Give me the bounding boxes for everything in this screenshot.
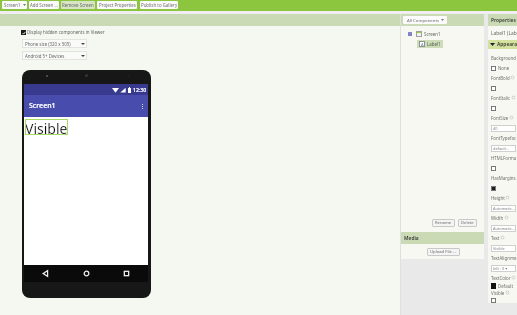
button[interactable]: Back: [42, 270, 49, 277]
button[interactable]: Rename: [432, 219, 455, 227]
staticText: Default: [498, 283, 514, 289]
staticText: TextAlignme: [491, 255, 517, 261]
staticText: 12:30: [133, 86, 147, 93]
button[interactable]: default...: [491, 145, 516, 152]
button[interactable]: Default: [491, 283, 514, 289]
button[interactable]: Add Screen ...: [29, 1, 59, 9]
staticText: Phone size (320 x 505): [25, 41, 71, 47]
staticText: Width: [491, 215, 504, 221]
button[interactable]: Project Properties: [97, 1, 137, 9]
button[interactable]: A: [417, 40, 443, 48]
button[interactable]: [488, 182, 517, 194]
button[interactable]: 40: [491, 125, 516, 132]
staticText: A: [421, 42, 424, 47]
staticText: Screen1: [4, 2, 21, 8]
staticText: TextColor: [491, 275, 511, 281]
staticText: HasMargins: [491, 175, 516, 181]
button[interactable]: Android 5+ Devices: [22, 51, 87, 60]
staticText: Add Screen ...: [30, 2, 58, 8]
staticText: Project Properties: [99, 2, 136, 8]
button[interactable]: Display hidden components in Viewer: [21, 29, 105, 35]
button[interactable]: Screen1: [408, 31, 441, 37]
button[interactable]: Appearanc: [488, 40, 517, 49]
button[interactable]: [488, 82, 517, 94]
button[interactable]: Delete: [458, 219, 477, 227]
staticText: FontTypefac: [491, 135, 517, 141]
button[interactable]: Recents: [123, 270, 130, 277]
button[interactable]: [488, 297, 517, 303]
staticText: Remove Screen: [62, 2, 94, 8]
staticText: Display hidden components in Viewer: [27, 29, 105, 35]
staticText: Height: [491, 195, 505, 201]
button[interactable]: Automatic...: [491, 205, 516, 212]
staticText: Media: [404, 235, 419, 242]
button[interactable]: [488, 162, 517, 174]
button[interactable]: Automatic...: [491, 225, 516, 232]
button[interactable]: left : 0 ▾: [491, 265, 516, 272]
button[interactable]: Remove Screen: [61, 1, 95, 9]
button[interactable]: Phone size (320 x 505): [22, 39, 87, 48]
staticText: Label1: [427, 41, 441, 47]
staticText: Delete: [461, 220, 474, 226]
staticText: Visible: [493, 246, 505, 251]
staticText: Background: [491, 55, 516, 61]
staticText: Screen1: [29, 101, 56, 111]
button[interactable]: Publish to Gallery: [140, 1, 178, 9]
staticText: Publish to Gallery: [141, 2, 178, 8]
staticText: Rename: [435, 220, 452, 226]
staticText: FontSize: [491, 115, 509, 121]
button[interactable]: None: [488, 62, 517, 74]
button[interactable]: [488, 102, 517, 114]
staticText: Android 5+ Devices: [25, 53, 65, 59]
staticText: Screen1: [424, 31, 441, 37]
staticText: Properties: [491, 17, 516, 24]
staticText: Appearanc: [497, 41, 517, 48]
staticText: None: [498, 65, 510, 71]
staticText: left : 0 ▾: [493, 266, 508, 271]
staticText: 40: [493, 126, 498, 131]
staticText: Visible: [25, 119, 68, 135]
staticText: Text: [491, 235, 500, 241]
staticText: HTMLForma: [491, 155, 517, 161]
staticText: Label1 (Lab: [491, 30, 517, 37]
button[interactable]: Home: [83, 270, 90, 277]
staticText: Automatic...: [493, 226, 515, 231]
button[interactable]: All Components: [403, 16, 447, 24]
staticText: default...: [493, 146, 510, 151]
button[interactable]: Screen1: [2, 1, 27, 9]
staticText: Upload File ...: [430, 249, 457, 255]
staticText: FontBold: [491, 75, 510, 81]
button[interactable]: Upload File ...: [427, 248, 460, 256]
staticText: Visible: [491, 290, 505, 296]
button[interactable]: Visible: [491, 245, 516, 252]
staticText: FontItalic: [491, 95, 511, 101]
staticText: All Components: [407, 17, 439, 23]
staticText: Automatic...: [493, 206, 515, 211]
